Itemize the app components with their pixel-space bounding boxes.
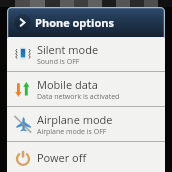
staticText: Phone options xyxy=(35,15,114,30)
button[interactable]: Power off xyxy=(7,142,165,172)
button[interactable]: Airplane mode xyxy=(7,107,165,141)
staticText: Sound is OFF xyxy=(37,57,80,67)
button[interactable]: Mobile data xyxy=(7,72,165,106)
staticText: Silent mode xyxy=(37,42,99,57)
staticText: Power off xyxy=(37,150,87,165)
staticText: Data network is activated xyxy=(37,92,120,102)
button[interactable]: Silent mode xyxy=(7,37,165,71)
staticText: Mobile data xyxy=(37,77,98,92)
staticText: Airplane mode xyxy=(37,112,113,127)
button[interactable]: Expand phone options xyxy=(14,14,31,31)
staticText: Airplane mode is OFF xyxy=(37,127,107,137)
